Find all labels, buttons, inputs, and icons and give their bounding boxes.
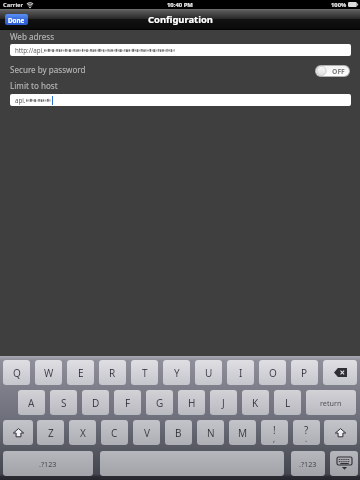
staticText: O <box>269 366 277 380</box>
button[interactable]: return <box>306 390 356 415</box>
button[interactable]: ! <box>261 420 288 445</box>
staticText: Configuration <box>148 13 213 26</box>
staticText: OFF <box>332 67 345 76</box>
button[interactable]: .?123 <box>3 451 93 476</box>
button[interactable]: Backspace <box>323 360 357 385</box>
staticText: , <box>273 433 276 444</box>
button[interactable]: http://api. <box>10 44 351 56</box>
staticText: N <box>207 426 215 440</box>
staticText: 100% <box>331 1 347 9</box>
button[interactable]: F <box>114 390 141 415</box>
staticText: return <box>320 398 342 408</box>
staticText: .?123 <box>39 459 57 469</box>
button[interactable]: Secure by password off <box>316 66 349 76</box>
staticText: Z <box>48 426 54 440</box>
staticText: F <box>125 396 131 410</box>
staticText: E <box>78 366 84 380</box>
staticText: ? <box>304 423 309 437</box>
button[interactable]: M <box>229 420 256 445</box>
button[interactable]: Z <box>37 420 64 445</box>
button[interactable]: R <box>99 360 126 385</box>
button[interactable]: api. <box>10 94 351 106</box>
button[interactable]: Y <box>163 360 190 385</box>
button[interactable]: K <box>242 390 269 415</box>
staticText: L <box>285 396 291 410</box>
button[interactable]: Q <box>3 360 30 385</box>
button[interactable]: .?123 <box>291 451 325 476</box>
button[interactable]: I <box>227 360 254 385</box>
staticText: S <box>61 396 67 410</box>
button[interactable]: Hide keyboard <box>330 451 358 476</box>
button[interactable]: U <box>195 360 222 385</box>
staticText: 10:40 PM <box>167 1 193 9</box>
button[interactable]: V <box>133 420 160 445</box>
button[interactable]: N <box>197 420 224 445</box>
button[interactable]: B <box>165 420 192 445</box>
staticText: H <box>188 396 196 410</box>
staticText: ! <box>273 423 276 437</box>
staticText: V <box>144 426 150 440</box>
staticText: T <box>142 366 148 380</box>
button[interactable]: Space <box>100 451 284 476</box>
staticText: D <box>92 396 100 410</box>
button[interactable]: S <box>50 390 77 415</box>
button[interactable]: Shift <box>324 420 357 445</box>
staticText: U <box>205 366 213 380</box>
staticText: J <box>222 396 225 410</box>
staticText: .?123 <box>299 459 317 469</box>
staticText: G <box>156 396 164 410</box>
staticText: W <box>44 366 54 380</box>
staticText: M <box>238 426 248 440</box>
staticText: P <box>301 366 308 380</box>
staticText: Y <box>174 366 180 380</box>
staticText: Done <box>8 16 25 24</box>
button[interactable]: C <box>101 420 128 445</box>
button[interactable]: E <box>67 360 94 385</box>
staticText: X <box>80 426 86 440</box>
staticText: Limit to host <box>10 80 58 91</box>
button[interactable]: Done <box>5 14 28 25</box>
button[interactable]: T <box>131 360 158 385</box>
button[interactable]: ? <box>293 420 320 445</box>
staticText: Web adress <box>10 31 55 42</box>
staticText: R <box>109 366 116 380</box>
staticText: K <box>252 396 259 410</box>
button[interactable]: Shift <box>3 420 33 445</box>
button[interactable]: O <box>259 360 286 385</box>
staticText: C <box>111 426 118 440</box>
button[interactable]: X <box>69 420 96 445</box>
staticText: B <box>175 426 182 440</box>
staticText: A <box>28 396 35 410</box>
button[interactable]: J <box>210 390 237 415</box>
button[interactable]: G <box>146 390 173 415</box>
button[interactable]: H <box>178 390 205 415</box>
button[interactable]: L <box>274 390 301 415</box>
staticText: Secure by password <box>10 64 86 75</box>
button[interactable]: D <box>82 390 109 415</box>
button[interactable]: A <box>18 390 45 415</box>
button[interactable]: W <box>35 360 62 385</box>
staticText: . <box>305 433 308 444</box>
staticText: Q <box>13 366 21 380</box>
staticText: http://api. <box>15 46 44 54</box>
staticText: I <box>239 366 243 380</box>
staticText: api. <box>15 96 26 104</box>
staticText: Carrier <box>3 1 24 9</box>
button[interactable]: P <box>291 360 318 385</box>
